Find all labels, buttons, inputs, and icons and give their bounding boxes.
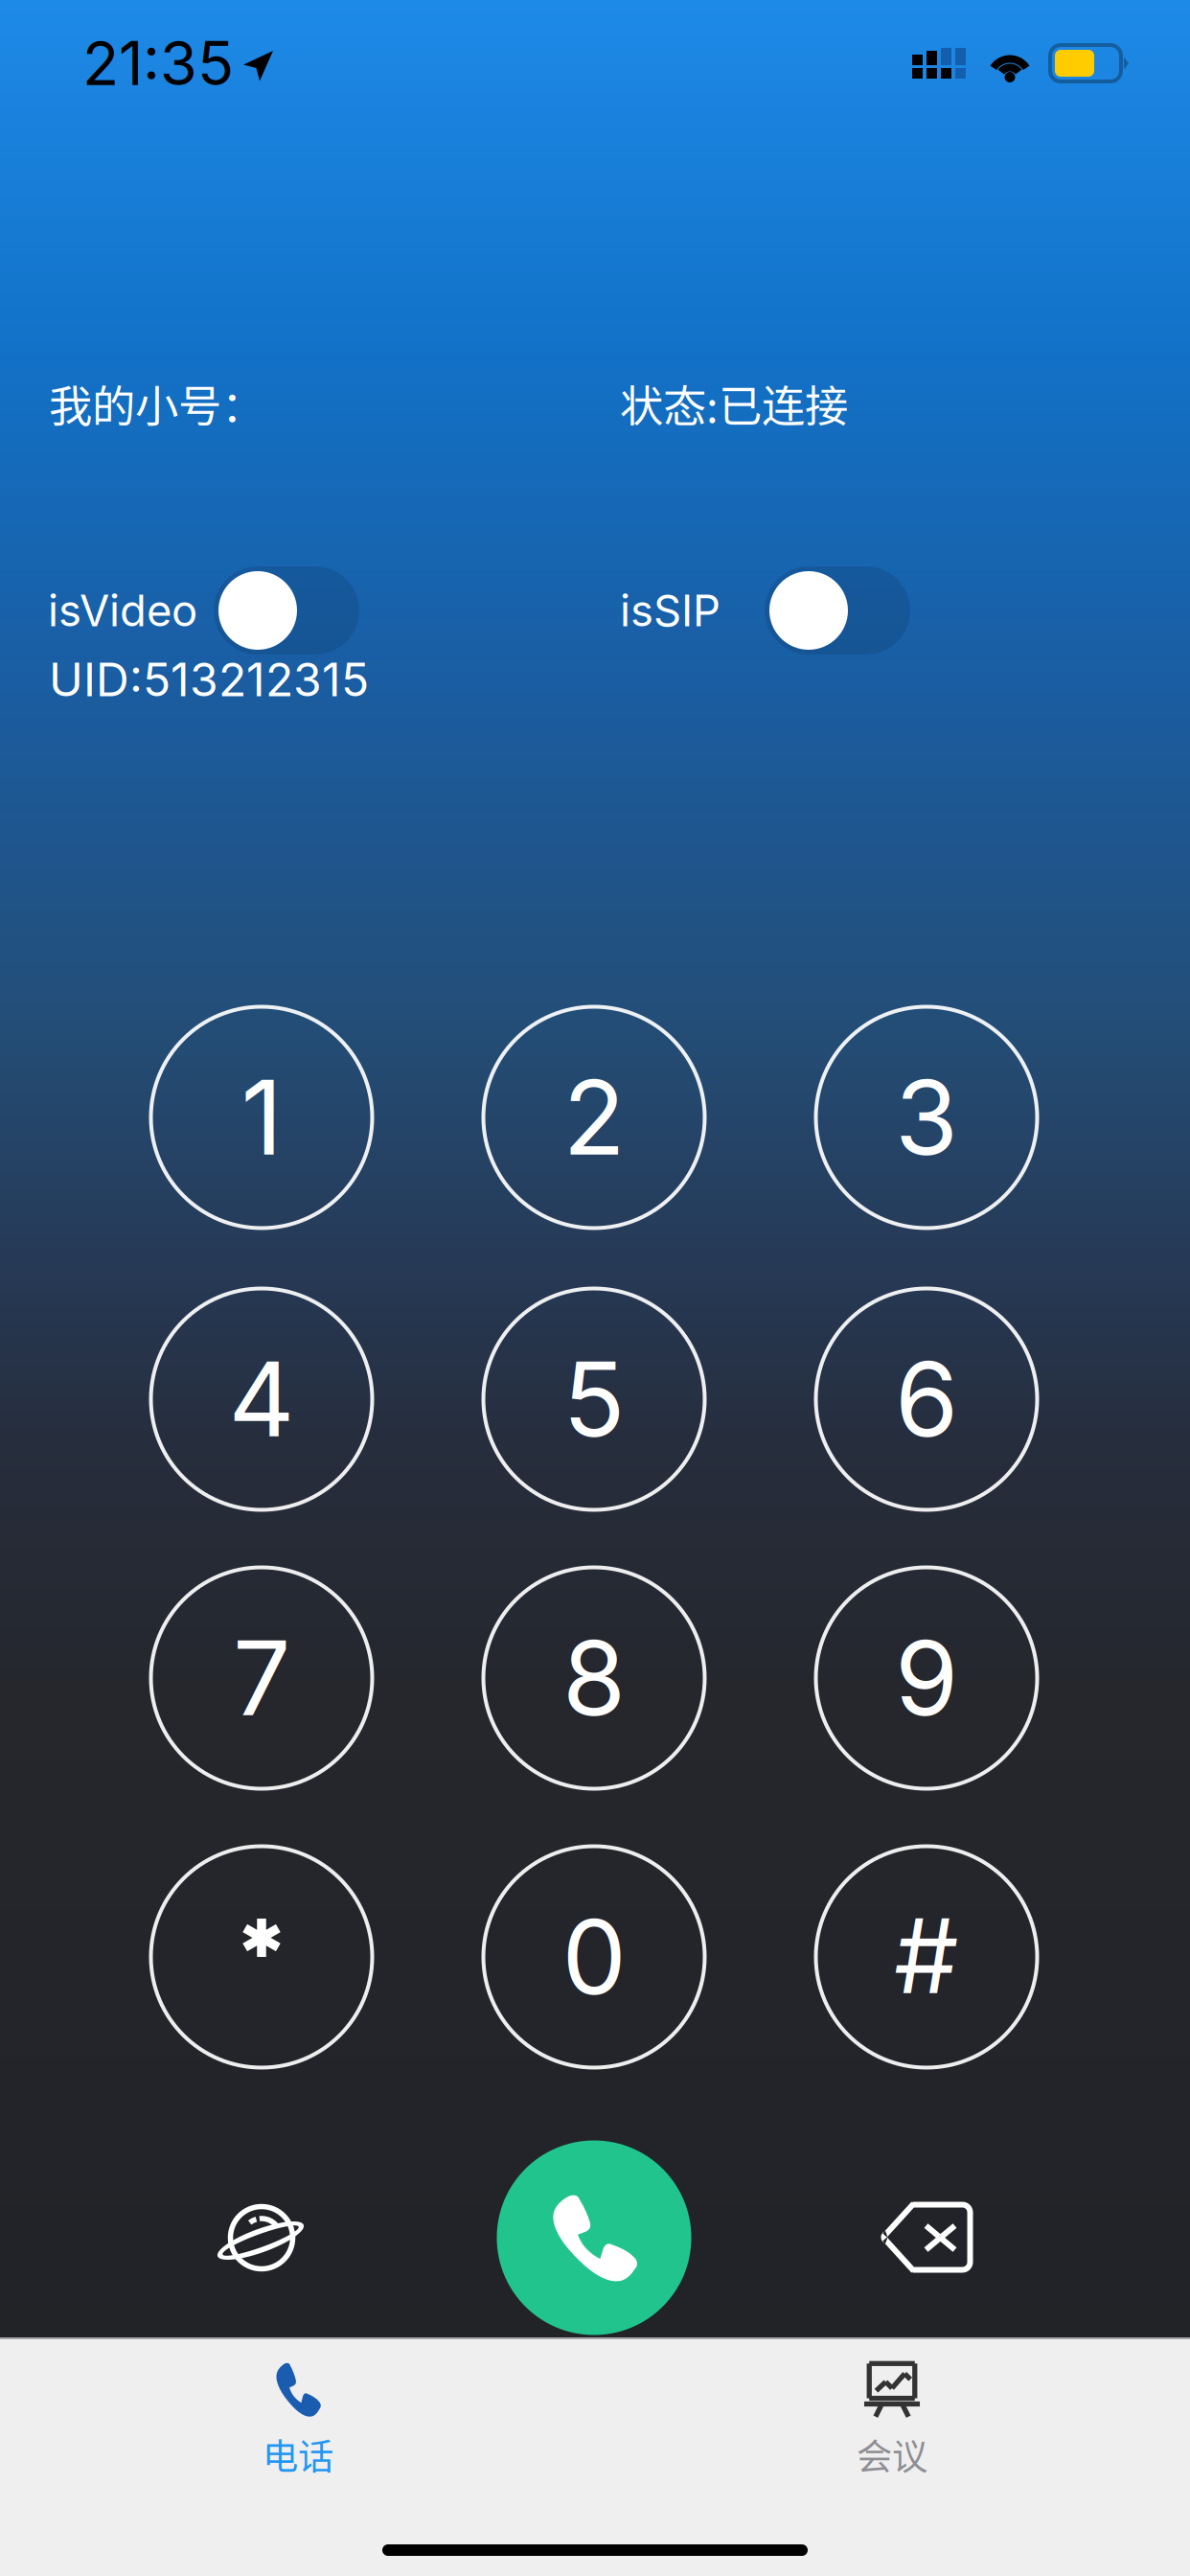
button[interactable]: Network <box>175 2151 348 2324</box>
button[interactable]: 8 <box>483 1567 705 1789</box>
button[interactable]: Toggle <box>765 566 910 655</box>
button[interactable]: # <box>816 1846 1037 2068</box>
staticText: isVideo <box>48 584 197 637</box>
button[interactable]: 3 <box>816 1007 1037 1228</box>
button[interactable]: Delete <box>841 2151 1014 2324</box>
button[interactable] <box>151 1846 372 2068</box>
staticText: 会议 <box>857 2428 927 2480</box>
staticText: 4 <box>229 1337 295 1461</box>
button[interactable]: 1 <box>151 1007 372 1228</box>
staticText: 6 <box>895 1337 958 1461</box>
button[interactable]: 2 <box>483 1007 705 1228</box>
staticText: 我的小号： <box>49 372 264 435</box>
staticText: # <box>894 1894 959 2018</box>
staticText: 2 <box>563 1056 625 1179</box>
staticText: 21:35 <box>82 27 234 100</box>
staticText: 9 <box>895 1616 958 1740</box>
staticText: 状态:已连接 <box>620 372 848 435</box>
button[interactable]: 7 <box>151 1567 372 1789</box>
button[interactable]: 电话 <box>1 2358 595 2480</box>
button[interactable]: 0 <box>483 1846 705 2068</box>
button[interactable]: 4 <box>151 1288 372 1510</box>
button[interactable]: 会议 <box>595 2358 1189 2480</box>
staticText: 5 <box>563 1337 625 1461</box>
button[interactable]: 5 <box>483 1288 705 1510</box>
staticText: UID:513212315 <box>49 652 369 707</box>
button[interactable]: Toggle <box>214 566 359 655</box>
staticText: 电话 <box>263 2428 333 2480</box>
button[interactable]: 6 <box>816 1288 1037 1510</box>
staticText: 8 <box>562 1616 626 1740</box>
staticText: 3 <box>895 1056 958 1179</box>
staticText: 0 <box>562 1895 626 2019</box>
staticText: 7 <box>233 1616 290 1740</box>
button[interactable]: Call <box>497 2140 691 2335</box>
staticText: 1 <box>241 1056 282 1179</box>
staticText: isSIP <box>620 584 721 637</box>
button[interactable]: 9 <box>816 1567 1037 1789</box>
